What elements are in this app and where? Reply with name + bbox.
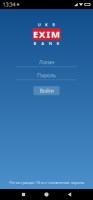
staticText: Регистрация / Восстановление пароля [9, 180, 84, 185]
staticText: Логин [39, 59, 54, 66]
staticText: Войти [39, 87, 53, 94]
button[interactable]: Пароль [16, 71, 77, 80]
staticText: Пароль [37, 72, 56, 79]
staticText: 13:34 [2, 1, 15, 8]
button[interactable]: Войти [33, 86, 59, 95]
button[interactable]: Регистрация / Восстановление пароля [0, 179, 93, 186]
button[interactable]: Логин [16, 58, 77, 67]
button[interactable]: Recent apps [12, 189, 35, 200]
button[interactable]: Home [35, 189, 58, 200]
staticText: B A N K [34, 41, 59, 46]
staticText: EXIM [33, 28, 60, 40]
button[interactable]: Back [58, 189, 81, 200]
staticText: U K R [38, 22, 55, 27]
